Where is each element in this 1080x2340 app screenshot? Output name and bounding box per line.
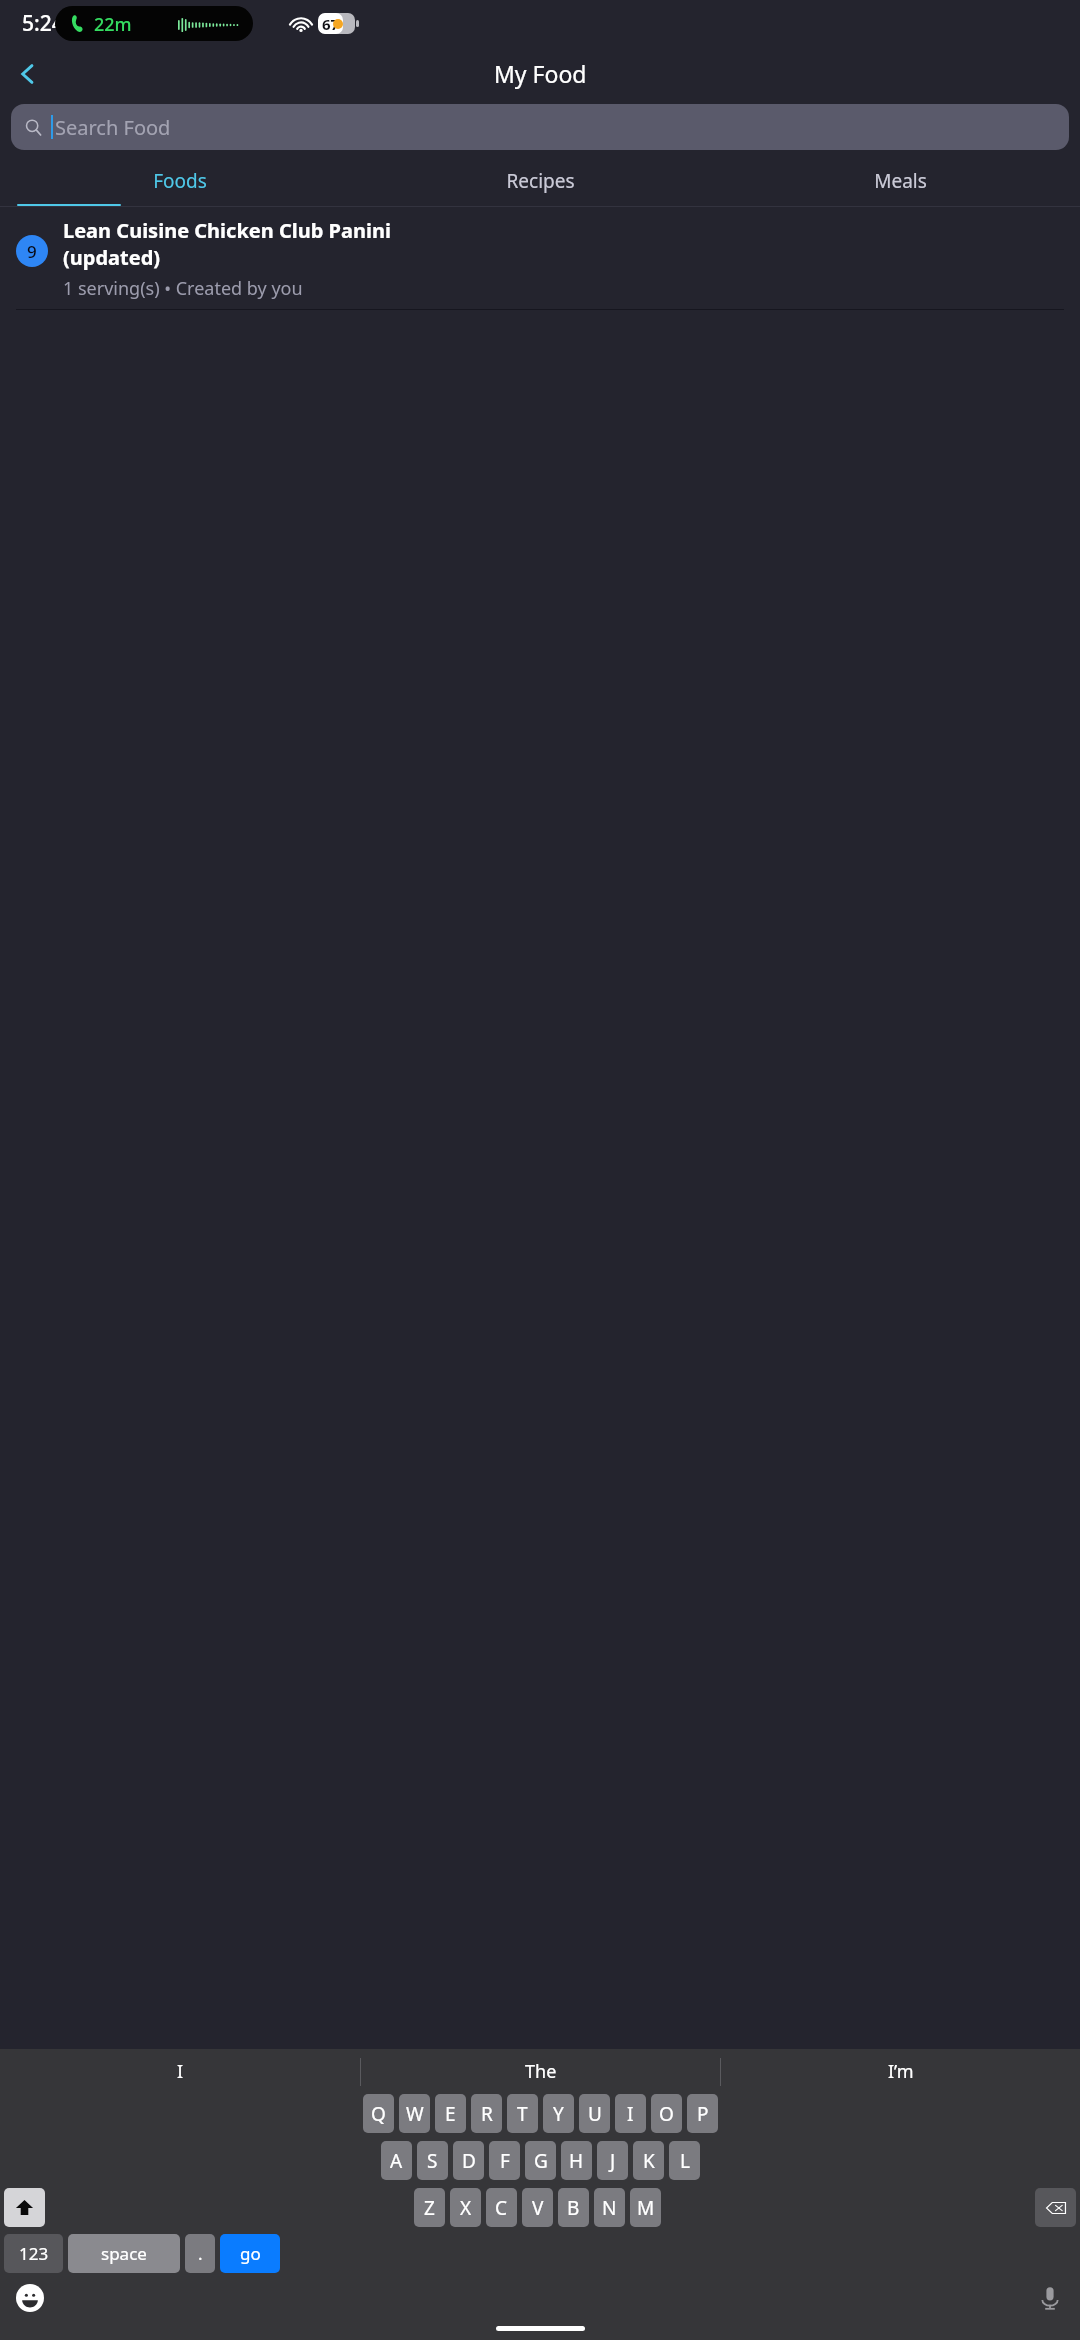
button[interactable]: C <box>486 2188 517 2227</box>
staticText: 9 <box>27 240 37 263</box>
button[interactable]: N <box>594 2188 625 2227</box>
button[interactable]: Shift <box>4 2188 45 2227</box>
staticText: G <box>534 2148 548 2174</box>
button[interactable]: Y <box>543 2094 574 2133</box>
button[interactable]: K <box>633 2141 664 2180</box>
staticText: 1 serving(s) • Created by you <box>63 276 303 301</box>
button[interactable]: Recipes <box>360 154 720 207</box>
staticText: F <box>500 2148 510 2174</box>
staticText: X <box>460 2195 472 2221</box>
staticText: P <box>697 2101 709 2127</box>
staticText: H <box>569 2148 584 2174</box>
button[interactable]: 9 <box>0 207 1080 310</box>
staticText: B <box>567 2195 580 2221</box>
button[interactable]: X <box>450 2188 481 2227</box>
button[interactable]: I’m <box>721 2049 1080 2094</box>
staticText: The <box>525 2059 557 2084</box>
staticText: U <box>588 2101 602 2127</box>
staticText: K <box>643 2148 655 2174</box>
button[interactable]: go <box>220 2234 280 2273</box>
button[interactable]: Voice input <box>1028 2276 1072 2320</box>
button[interactable]: H <box>561 2141 592 2180</box>
staticText: Y <box>553 2101 564 2127</box>
button[interactable]: Backspace <box>1035 2188 1076 2227</box>
staticText: C <box>495 2195 508 2221</box>
staticText: L <box>680 2148 690 2174</box>
staticText: V <box>532 2195 544 2221</box>
staticText: S <box>427 2148 438 2174</box>
staticText: E <box>445 2101 456 2127</box>
staticText: A <box>390 2148 403 2174</box>
button[interactable]: space <box>68 2234 180 2273</box>
button[interactable]: U <box>579 2094 610 2133</box>
button[interactable]: O <box>651 2094 682 2133</box>
staticText: Foods <box>153 168 207 194</box>
button[interactable]: Foods <box>0 154 360 207</box>
staticText: Recipes <box>506 168 575 194</box>
staticText: N <box>602 2195 617 2221</box>
button[interactable]: A <box>381 2141 412 2180</box>
staticText: space <box>101 2242 147 2265</box>
staticText: Z <box>424 2195 435 2221</box>
button[interactable]: G <box>525 2141 556 2180</box>
staticText: 123 <box>19 2242 49 2265</box>
button[interactable]: 123 <box>4 2234 63 2273</box>
button[interactable]: V <box>522 2188 553 2227</box>
staticText: W <box>406 2101 424 2127</box>
button[interactable]: The <box>361 2049 720 2094</box>
button[interactable]: P <box>687 2094 718 2133</box>
button[interactable]: E <box>435 2094 466 2133</box>
button[interactable]: F <box>489 2141 520 2180</box>
button[interactable]: R <box>471 2094 502 2133</box>
staticText: Lean Cuisine Chicken Club Panini <box>63 217 391 244</box>
staticText: I <box>177 2059 184 2084</box>
staticText: My Food <box>494 58 587 89</box>
button[interactable]: Emoji <box>8 2276 52 2320</box>
staticText: I’m <box>888 2059 914 2084</box>
staticText: M <box>637 2195 655 2221</box>
button[interactable]: T <box>507 2094 538 2133</box>
button[interactable]: B <box>558 2188 589 2227</box>
button[interactable]: S <box>417 2141 448 2180</box>
staticText: Meals <box>874 168 927 194</box>
button[interactable]: I <box>615 2094 646 2133</box>
button[interactable]: J <box>597 2141 628 2180</box>
staticText: J <box>610 2148 616 2174</box>
button[interactable]: Z <box>414 2188 445 2227</box>
staticText: 22m <box>94 12 132 37</box>
button[interactable]: Meals <box>720 154 1080 207</box>
button[interactable]: . <box>185 2234 215 2273</box>
staticText: O <box>659 2101 674 2127</box>
button[interactable]: W <box>399 2094 430 2133</box>
staticText: Q <box>371 2101 386 2127</box>
button[interactable]: L <box>669 2141 700 2180</box>
staticText: D <box>462 2148 476 2174</box>
button[interactable]: Back <box>4 50 52 98</box>
button[interactable]: Q <box>363 2094 394 2133</box>
button[interactable]: Search Food <box>11 104 1069 150</box>
staticText: . <box>198 2242 203 2265</box>
staticText: (updated) <box>63 244 161 271</box>
staticText: T <box>517 2101 528 2127</box>
staticText: R <box>481 2101 493 2127</box>
staticText: I <box>627 2101 634 2127</box>
staticText: go <box>240 2242 261 2265</box>
button[interactable]: I <box>0 2049 360 2094</box>
staticText: 5:24 <box>22 9 64 38</box>
button[interactable]: M <box>630 2188 661 2227</box>
button[interactable]: D <box>453 2141 484 2180</box>
staticText: Search Food <box>55 114 171 141</box>
staticText: 67 <box>322 14 340 34</box>
